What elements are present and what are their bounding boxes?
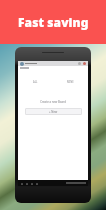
staticText: MINE — [67, 80, 74, 84]
button[interactable]: ALL — [18, 71, 53, 93]
staticText: ALL — [33, 80, 38, 84]
staticText: + New — [49, 110, 58, 114]
button[interactable]: Nav — [35, 182, 38, 185]
button[interactable]: Nav — [25, 182, 28, 185]
staticText: Fast saving — [18, 14, 89, 30]
staticText: Create a new Board — [18, 100, 88, 104]
button[interactable]: + New — [25, 108, 82, 115]
button[interactable] — [18, 61, 88, 66]
button[interactable]: Nav — [20, 182, 23, 185]
button[interactable]: MINE — [53, 71, 88, 93]
button[interactable]: Nav — [30, 182, 33, 185]
